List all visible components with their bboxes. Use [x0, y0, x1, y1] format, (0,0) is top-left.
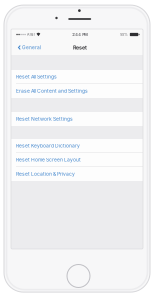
staticText: Reset Network Settings: [16, 116, 73, 122]
staticText: 2:44 PM: [72, 32, 88, 37]
button[interactable]: Reset Location & Privacy: [11, 167, 143, 181]
button[interactable]: Reset All Settings: [11, 70, 143, 84]
button[interactable]: Reset Network Settings: [11, 112, 143, 126]
staticText: AT&T: [27, 32, 35, 37]
button[interactable]: Reset Home Screen Layout: [11, 153, 143, 167]
staticText: 92%: [120, 32, 128, 37]
staticText: Reset Keyboard Dictionary: [16, 143, 80, 149]
button[interactable]: Erase All Content and Settings: [11, 84, 143, 98]
staticText: Reset Home Screen Layout: [16, 157, 81, 163]
staticText: Erase All Content and Settings: [16, 88, 88, 94]
staticText: Reset: [73, 44, 87, 51]
button[interactable]: General: [11, 43, 41, 52]
staticText: Reset Location & Privacy: [16, 171, 75, 177]
staticText: General: [22, 45, 41, 50]
staticText: Reset All Settings: [16, 74, 57, 80]
button[interactable]: Reset Keyboard Dictionary: [11, 139, 143, 153]
